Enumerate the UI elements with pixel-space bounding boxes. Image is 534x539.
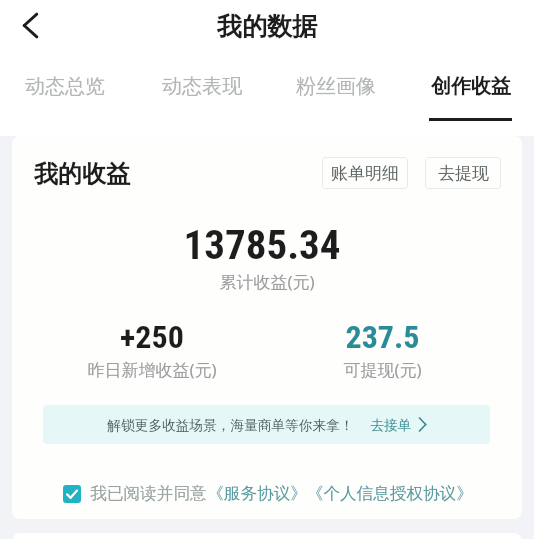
staticText: 创作收益 [431, 74, 511, 99]
staticText: 我的数据 [217, 11, 317, 42]
button[interactable]: 《服务协议》《个人信息授权协议》 [207, 483, 473, 504]
staticText: 解锁更多收益场景，海量商单等你来拿！ [107, 417, 354, 434]
staticText: 13785.34 [12, 221, 517, 269]
staticText: 去接单 [370, 417, 412, 434]
button[interactable]: 创作收益 [403, 55, 534, 136]
staticText: 去提现 [438, 163, 489, 184]
staticText: +250 [120, 318, 184, 356]
staticText: 昨日新增收益(元) [87, 358, 217, 381]
staticText: 粉丝画像 [296, 74, 376, 99]
staticText: 可提现(元) [343, 358, 422, 381]
staticText: 237.5 [345, 318, 420, 356]
button[interactable]: 解锁更多收益场景，海量商单等你来拿！ [43, 405, 490, 444]
button[interactable]: 去提现 [425, 157, 501, 189]
staticText: 我已阅读并同意 [90, 483, 207, 504]
staticText: 动态表现 [162, 74, 242, 99]
button[interactable]: 粉丝画像 [268, 55, 403, 136]
button[interactable]: 动态表现 [134, 55, 269, 136]
staticText: 账单明细 [331, 163, 399, 184]
button[interactable]: Agree checkbox [63, 485, 81, 503]
staticText: 我的收益 [34, 159, 130, 189]
button[interactable]: 动态总览 [0, 55, 132, 136]
staticText: 动态总览 [25, 74, 105, 99]
button[interactable]: Back [10, 5, 50, 45]
button[interactable]: 账单明细 [322, 157, 408, 189]
staticText: 累计收益(元) [12, 270, 522, 293]
